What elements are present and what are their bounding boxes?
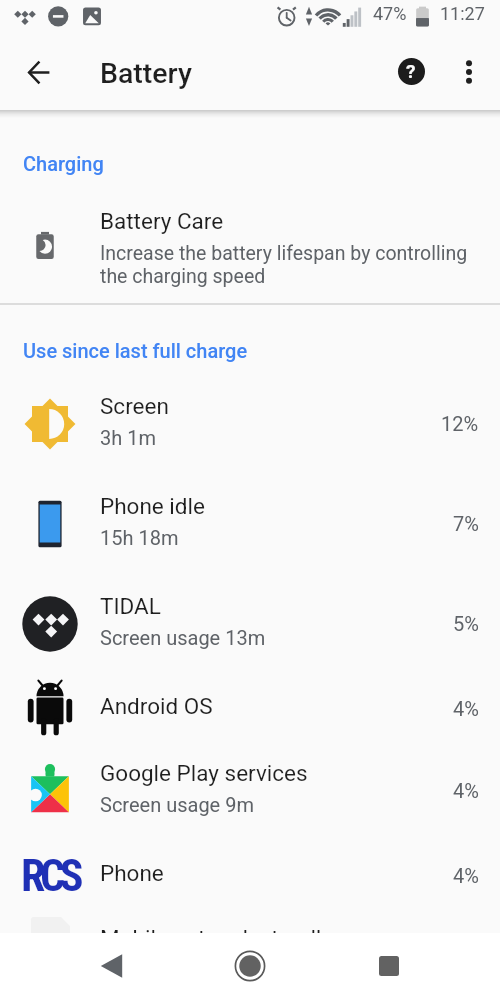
staticText: ?: [406, 60, 416, 82]
staticText: RCS: [21, 850, 79, 902]
button[interactable]: Recent apps: [355, 932, 423, 999]
button[interactable]: Screen: [0, 368, 500, 468]
staticText: Screen: [100, 393, 169, 419]
button[interactable]: Battery Care: [0, 190, 500, 302]
staticText: 12%: [441, 412, 479, 435]
staticText: 4%: [453, 779, 479, 802]
staticText: 4%: [453, 864, 479, 887]
staticText: Screen usage 13m: [100, 626, 266, 649]
staticText: Increase the battery lifespan by control…: [100, 242, 468, 288]
button[interactable]: TIDAL: [0, 568, 500, 668]
staticText: 7%: [453, 512, 479, 535]
staticText: 3h 1m: [100, 426, 156, 449]
button[interactable]: More options: [446, 49, 492, 95]
staticText: 47%: [373, 3, 407, 24]
staticText: Phone idle: [100, 493, 205, 519]
button[interactable]: Navigate up: [15, 48, 63, 96]
staticText: 5%: [453, 612, 479, 635]
button[interactable]: Back: [77, 932, 145, 999]
staticText: 15h 18m: [100, 526, 179, 549]
button[interactable]: Android OS: [0, 668, 500, 735]
staticText: Phone: [100, 860, 164, 886]
button[interactable]: RCS: [0, 835, 500, 902]
button[interactable]: Home: [216, 932, 284, 999]
button[interactable]: Phone idle: [0, 468, 500, 568]
button[interactable]: Mobile network standby: [0, 900, 500, 933]
button[interactable]: Help: [387, 47, 435, 95]
staticText: Battery Care: [100, 208, 224, 234]
staticText: Android OS: [100, 693, 213, 719]
staticText: Use since last full charge: [23, 339, 248, 362]
staticText: Google Play services: [100, 760, 308, 786]
staticText: 11:27: [440, 3, 485, 24]
staticText: 4%: [453, 697, 479, 720]
button[interactable]: Google Play services: [0, 735, 500, 835]
staticText: Battery: [100, 57, 192, 90]
staticText: Screen usage 9m: [100, 793, 254, 816]
staticText: Charging: [23, 152, 104, 175]
staticText: Mobile network standby: [100, 925, 340, 933]
staticText: TIDAL: [100, 593, 161, 619]
